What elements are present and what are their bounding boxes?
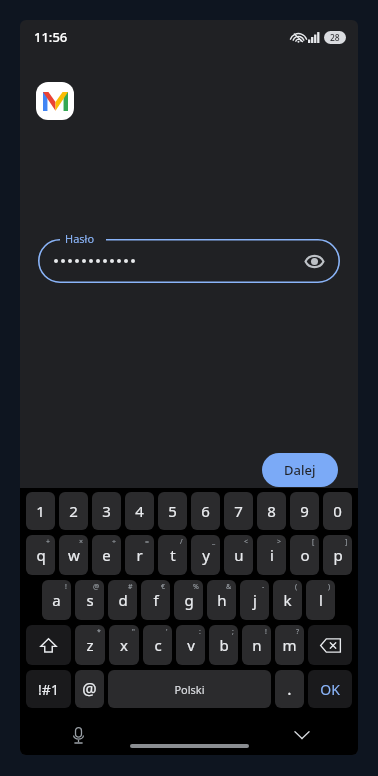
staticText: 28	[330, 32, 340, 44]
button[interactable]: 7	[224, 492, 253, 530]
staticText: Dalej	[284, 461, 316, 479]
staticText: p	[333, 545, 343, 565]
staticText: i	[270, 545, 274, 565]
staticText: OK	[320, 680, 340, 699]
button[interactable]: u	[224, 535, 253, 575]
staticText: b	[219, 635, 229, 655]
staticText: g	[184, 590, 194, 610]
button[interactable]: a	[42, 580, 71, 620]
button[interactable]: q	[26, 535, 55, 575]
staticText: 11:56	[34, 28, 68, 46]
staticText: 7	[234, 501, 243, 521]
staticText: m	[282, 635, 297, 655]
button[interactable]: z	[75, 625, 105, 665]
staticText: ÷	[112, 537, 117, 547]
staticText: q	[36, 545, 46, 565]
staticText: <	[244, 537, 249, 547]
staticText: :	[199, 627, 201, 637]
staticText: z	[86, 635, 94, 655]
staticText: o	[300, 545, 310, 565]
button[interactable]: Hide keyboard	[288, 721, 316, 749]
button[interactable]: 3	[92, 492, 121, 530]
staticText: l	[319, 590, 323, 610]
button[interactable]: e	[92, 535, 121, 575]
button[interactable]: x	[109, 625, 139, 665]
button[interactable]: w	[59, 535, 88, 575]
staticText: /	[180, 537, 183, 547]
button[interactable]: .	[275, 670, 304, 708]
button[interactable]: 8	[257, 492, 286, 530]
button[interactable]: c	[143, 625, 172, 665]
staticText: x	[120, 635, 128, 655]
staticText: 6	[201, 501, 210, 521]
staticText: j	[253, 590, 257, 610]
button[interactable]: Show password	[38, 239, 340, 283]
staticText: 5	[168, 501, 177, 521]
staticText: *	[97, 627, 101, 637]
button[interactable]: 9	[290, 492, 319, 530]
button[interactable]: 2	[59, 492, 88, 530]
button[interactable]: b	[209, 625, 238, 665]
button[interactable]: t	[158, 535, 187, 575]
button[interactable]: j	[240, 580, 269, 620]
staticText: _	[212, 537, 216, 547]
staticText: 2	[69, 501, 78, 521]
staticText: €	[161, 582, 166, 592]
button[interactable]: y	[191, 535, 220, 575]
staticText: u	[234, 545, 244, 565]
button[interactable]: Voice input	[64, 721, 92, 749]
staticText: ]	[345, 537, 348, 547]
button[interactable]: n	[242, 625, 271, 665]
button[interactable]: Polski	[108, 670, 271, 708]
staticText: s	[86, 590, 94, 610]
button[interactable]: f	[141, 580, 170, 620]
staticText: @	[93, 582, 100, 592]
staticText: Hasło	[65, 231, 95, 246]
staticText: v	[187, 635, 195, 655]
button[interactable]: s	[75, 580, 104, 620]
staticText: )	[328, 582, 331, 592]
button[interactable]: OK	[308, 670, 352, 708]
staticText: c	[154, 635, 162, 655]
staticText: f	[153, 590, 159, 610]
staticText: !	[65, 582, 67, 592]
staticText: 3	[102, 501, 111, 521]
staticText: r	[136, 545, 143, 565]
staticText: &	[226, 582, 232, 592]
button[interactable]: d	[108, 580, 137, 620]
button[interactable]: @	[75, 670, 104, 708]
staticText: =	[145, 537, 150, 547]
button[interactable]: 0	[323, 492, 352, 530]
button[interactable]: 6	[191, 492, 220, 530]
button[interactable]: 5	[158, 492, 187, 530]
staticText: -	[262, 582, 265, 592]
staticText: #	[128, 582, 133, 592]
staticText: '	[166, 627, 168, 637]
button[interactable]: l	[306, 580, 335, 620]
staticText: .	[287, 678, 292, 700]
staticText: >	[277, 537, 282, 547]
button[interactable]: p	[323, 535, 352, 575]
button[interactable]: m	[275, 625, 304, 665]
button[interactable]: Dalej	[262, 453, 338, 487]
staticText: y	[202, 545, 210, 565]
button[interactable]: 1	[26, 492, 55, 530]
button[interactable]: o	[290, 535, 319, 575]
button[interactable]: Show password	[302, 249, 326, 273]
staticText: a	[52, 590, 61, 610]
button[interactable]: Backspace	[308, 625, 352, 665]
button[interactable]: k	[273, 580, 302, 620]
staticText: !	[265, 627, 267, 637]
button[interactable]: r	[125, 535, 154, 575]
button[interactable]: g	[174, 580, 203, 620]
button[interactable]: Shift	[26, 625, 71, 665]
staticText: e	[102, 545, 111, 565]
button[interactable]: v	[176, 625, 205, 665]
button[interactable]: !#1	[26, 670, 71, 708]
button[interactable]: 4	[125, 492, 154, 530]
staticText: n	[252, 635, 262, 655]
staticText: ;	[232, 627, 234, 637]
staticText: !#1	[38, 680, 59, 699]
button[interactable]: i	[257, 535, 286, 575]
button[interactable]: h	[207, 580, 236, 620]
